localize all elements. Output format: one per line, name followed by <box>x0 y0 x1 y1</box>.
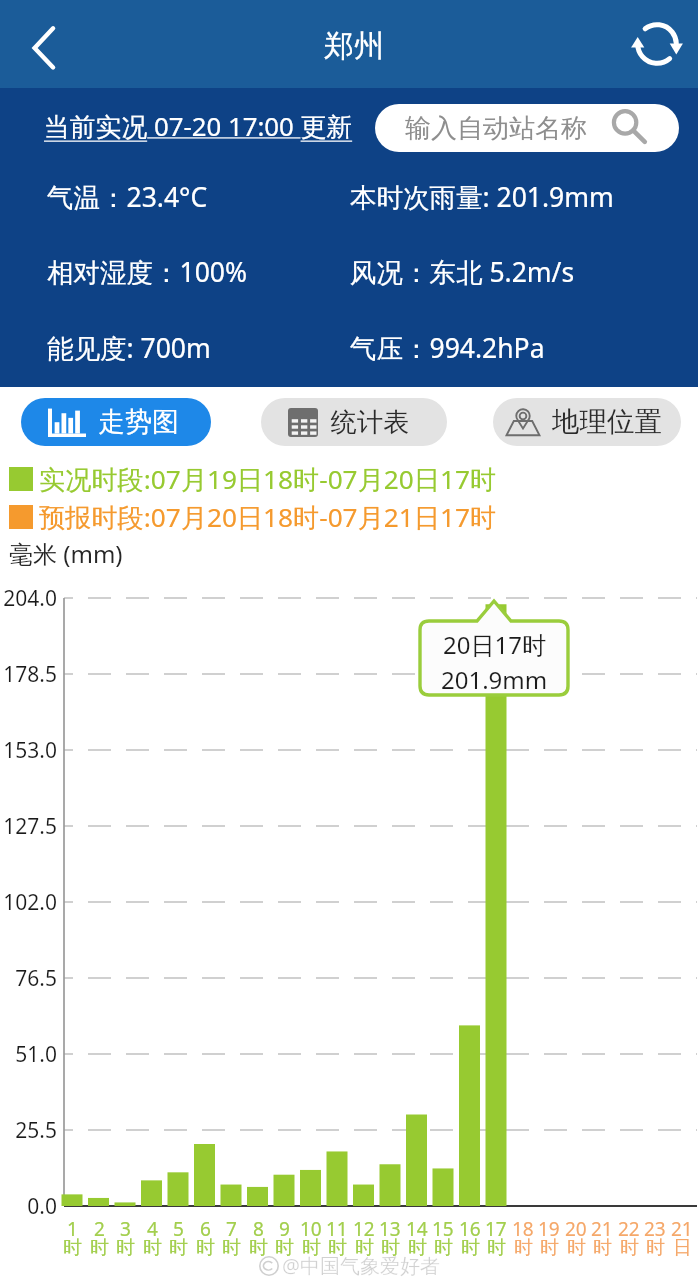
staticText: 时 <box>169 1236 188 1260</box>
staticText: 时 <box>540 1236 559 1260</box>
button[interactable]: Refresh <box>626 13 688 75</box>
staticText: 51.0 <box>0 1040 57 1069</box>
button[interactable]: 走势图 <box>21 398 211 446</box>
staticText: 1 <box>67 1216 78 1242</box>
staticText: 时 <box>381 1236 400 1260</box>
staticText: 25.5 <box>0 1116 57 1145</box>
staticText: 统计表 <box>331 406 409 439</box>
staticText: 0.0 <box>0 1192 57 1221</box>
staticText: 时 <box>302 1236 321 1260</box>
staticText: 12 <box>353 1216 375 1242</box>
staticText: 76.5 <box>0 964 57 993</box>
staticText: 时 <box>408 1236 427 1260</box>
staticText: 风况：东北 5.2m/s <box>350 254 575 290</box>
staticText: 时 <box>646 1236 665 1260</box>
staticText: 时 <box>196 1236 215 1260</box>
staticText: 时 <box>249 1236 268 1260</box>
staticText: 21 <box>591 1216 613 1242</box>
staticText: 15 <box>432 1216 454 1242</box>
staticText: 8 <box>253 1216 264 1242</box>
staticText: 走势图 <box>98 405 179 439</box>
staticText: 13 <box>379 1216 401 1242</box>
staticText: 22 <box>618 1216 640 1242</box>
staticText: 时 <box>275 1236 294 1260</box>
staticText: 11 <box>326 1216 348 1242</box>
staticText: 17 <box>485 1216 507 1242</box>
staticText: 能见度: 700m <box>47 330 211 366</box>
staticText: 201.9mm <box>441 663 548 696</box>
staticText: 时 <box>487 1236 506 1260</box>
staticText: 气温：23.4°C <box>47 179 208 215</box>
staticText: @中国气象爱好者 <box>282 1252 440 1279</box>
staticText: 时 <box>63 1236 82 1260</box>
staticText: 18 <box>512 1216 534 1242</box>
staticText: 输入自动站名称 <box>405 112 587 145</box>
staticText: 时 <box>222 1236 241 1260</box>
button[interactable]: 地理位置 <box>493 398 681 446</box>
staticText: 20日17时 <box>443 628 546 661</box>
staticText: 相对湿度：100% <box>47 254 247 290</box>
staticText: 郑州 <box>324 27 384 65</box>
staticText: 时 <box>434 1236 453 1260</box>
staticText: 20 <box>565 1216 587 1242</box>
button[interactable]: 输入自动站名称 <box>375 104 679 152</box>
staticText: 9 <box>279 1216 290 1242</box>
staticText: 时 <box>514 1236 533 1260</box>
staticText: 19 <box>538 1216 560 1242</box>
staticText: 时 <box>593 1236 612 1260</box>
staticText: 时 <box>143 1236 162 1260</box>
staticText: 23 <box>644 1216 666 1242</box>
staticText: 时 <box>620 1236 639 1260</box>
button[interactable]: 当前实况 07-20 17:00 更新 <box>44 108 353 143</box>
staticText: 6 <box>200 1216 211 1242</box>
staticText: 时 <box>328 1236 347 1260</box>
staticText: 204.0 <box>0 584 57 613</box>
staticText: 4 <box>147 1216 158 1242</box>
staticText: 预报时段:07月20日18时-07月21日17时 <box>39 499 497 535</box>
staticText: 102.0 <box>0 888 57 917</box>
staticText: 21 <box>671 1216 693 1242</box>
staticText: 178.5 <box>0 660 57 689</box>
staticText: 气压：994.2hPa <box>350 330 545 366</box>
staticText: 2 <box>94 1216 105 1242</box>
staticText: 毫米 (mm) <box>9 537 123 570</box>
staticText: 时 <box>90 1236 109 1260</box>
staticText: 时 <box>355 1236 374 1260</box>
staticText: 时 <box>461 1236 480 1260</box>
staticText: 时 <box>567 1236 586 1260</box>
button[interactable]: Back <box>8 14 76 82</box>
staticText: 日 <box>673 1236 692 1260</box>
staticText: 5 <box>173 1216 184 1242</box>
staticText: 14 <box>406 1216 428 1242</box>
staticText: 本时次雨量: 201.9mm <box>350 179 614 215</box>
staticText: 实况时段:07月19日18时-07月20日17时 <box>39 461 497 497</box>
staticText: 时 <box>116 1236 135 1260</box>
staticText: 7 <box>226 1216 237 1242</box>
button[interactable]: 统计表 <box>261 398 447 446</box>
staticText: 153.0 <box>0 736 57 765</box>
staticText: 地理位置 <box>552 405 662 440</box>
staticText: 3 <box>120 1216 131 1242</box>
staticText: 16 <box>459 1216 481 1242</box>
staticText: 127.5 <box>0 812 57 841</box>
staticText: 10 <box>300 1216 322 1242</box>
